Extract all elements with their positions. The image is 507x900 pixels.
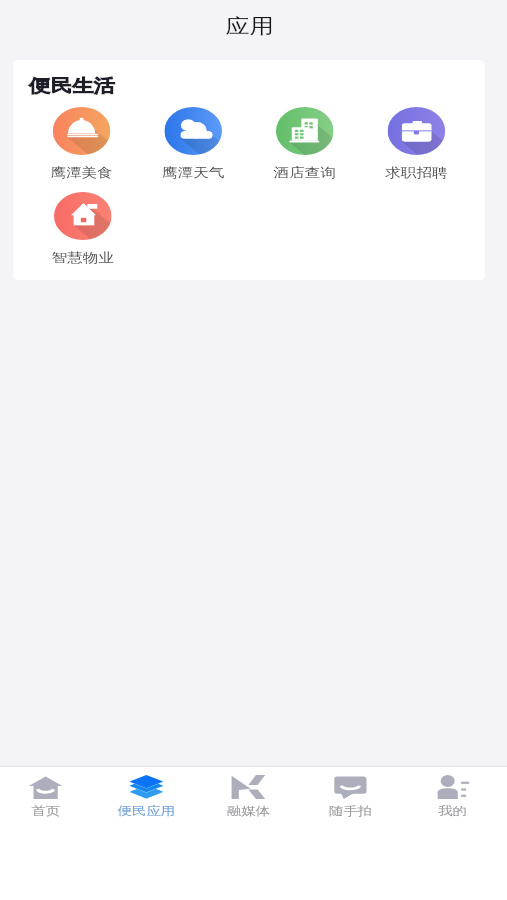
staticText: 应用 <box>226 14 274 39</box>
button[interactable]: 求职招聘 <box>360 107 472 180</box>
staticText: 鹰潭美食 <box>50 164 113 180</box>
staticText: 酒店查询 <box>274 164 336 180</box>
button[interactable]: 便民应用 <box>96 767 197 818</box>
button[interactable]: 鹰潭美食 <box>26 107 137 180</box>
staticText: 便民应用 <box>118 803 175 818</box>
staticText: 便民生活 <box>29 75 115 98</box>
staticText: 融媒体 <box>227 803 270 818</box>
button[interactable]: 鹰潭天气 <box>137 107 248 180</box>
staticText: 首页 <box>31 803 60 818</box>
staticText: 求职招聘 <box>385 164 448 180</box>
staticText: 智慧物业 <box>52 249 114 265</box>
staticText: 鹰潭天气 <box>162 164 224 180</box>
button[interactable]: 智慧物业 <box>26 192 138 265</box>
button[interactable]: 融媒体 <box>197 767 299 818</box>
button[interactable]: 我的 <box>401 767 503 818</box>
button[interactable]: 随手拍 <box>299 767 401 818</box>
button[interactable]: 酒店查询 <box>248 107 360 180</box>
button[interactable]: 首页 <box>0 767 96 818</box>
staticText: 我的 <box>438 803 467 818</box>
staticText: 随手拍 <box>329 803 372 818</box>
